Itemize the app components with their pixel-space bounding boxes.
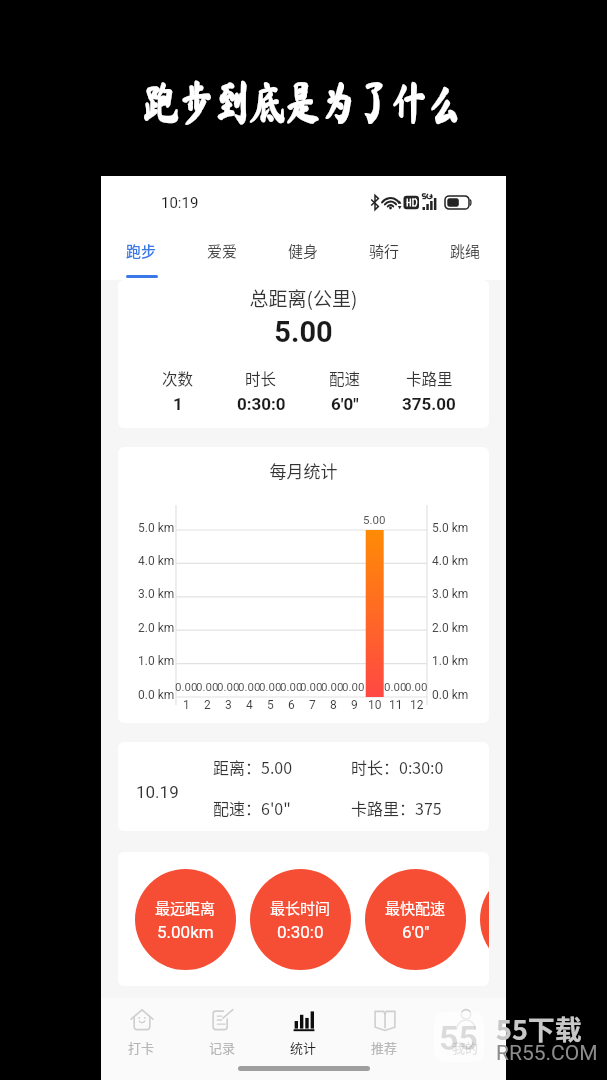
staticText: 健身 (288, 240, 319, 262)
staticText: 统计 (290, 1038, 317, 1057)
staticText: RR55.COM (496, 1041, 598, 1066)
staticText: 1 (173, 394, 183, 414)
staticText: 打卡 (128, 1038, 155, 1057)
staticText: 我的 (452, 1038, 479, 1057)
staticText: 10:19 (161, 194, 199, 212)
staticText: 0.00 (259, 680, 282, 693)
staticText: 距离：5.00 (213, 755, 351, 778)
staticText: 2 (204, 698, 211, 712)
staticText: 0.00 (384, 680, 407, 693)
staticText: 5.0 km (138, 521, 175, 535)
staticText: 跑步到底是为了什么 (143, 80, 461, 126)
staticText: 1 (183, 698, 190, 712)
staticText: 4.0 km (432, 554, 469, 568)
staticText: 0.00 (175, 680, 198, 693)
staticText: 0.00 (217, 680, 240, 693)
staticText: 每月统计 (118, 458, 489, 483)
staticText: 55下载 (496, 1009, 582, 1048)
staticText: 最快配速 (385, 897, 446, 919)
button[interactable]: 爱爱 (182, 224, 263, 280)
staticText: 最长时间 (270, 897, 331, 919)
button[interactable]: 推荐 (344, 998, 425, 1060)
staticText: 次数 (162, 367, 194, 389)
staticText: 6 (288, 698, 295, 712)
button[interactable]: 跳绳 (425, 224, 506, 280)
staticText: 爱爱 (207, 240, 238, 262)
staticText: 0.00 (321, 680, 344, 693)
staticText: 4 (246, 698, 253, 712)
staticText: 2.0 km (432, 621, 469, 635)
staticText: 3.0 km (432, 587, 469, 601)
button[interactable]: 骑行 (344, 224, 425, 280)
button[interactable]: 统计 (263, 998, 344, 1060)
staticText: 配速 (329, 367, 361, 389)
staticText: 0.00 (342, 680, 365, 693)
button[interactable]: 记录 (182, 998, 263, 1060)
staticText: 1.0 km (432, 654, 469, 668)
button[interactable]: 跑步 (101, 224, 182, 280)
staticText: 时长 (245, 367, 277, 389)
staticText: 3.0 km (138, 587, 175, 601)
staticText: 跑步 (126, 240, 157, 262)
staticText: 4.0 km (138, 554, 175, 568)
staticText: 10.19 (136, 782, 179, 802)
button[interactable]: 最长时间 (250, 869, 351, 970)
staticText: 5.00km (157, 922, 214, 942)
button[interactable]: 打卡 (101, 998, 182, 1060)
staticText: 375.00 (402, 394, 456, 414)
staticText: 9 (351, 698, 358, 712)
staticText: 55 (439, 1018, 479, 1058)
staticText: 时长：0:30:0 (351, 755, 489, 778)
staticText: 2.0 km (138, 621, 175, 635)
staticText: 0.00 (405, 680, 428, 693)
staticText: 0:30:0 (237, 394, 286, 414)
staticText: 6'0" (402, 922, 430, 942)
staticText: 推荐 (371, 1038, 398, 1057)
staticText: 12 (410, 698, 424, 712)
staticText: 0.0 km (432, 688, 469, 702)
staticText: 10 (368, 698, 382, 712)
staticText: 最远距离 (155, 897, 216, 919)
staticText: 记录 (209, 1038, 236, 1057)
staticText: 卡路里：375 (351, 796, 489, 819)
staticText: 卡路里 (406, 367, 453, 389)
button[interactable]: 最快配速 (365, 869, 466, 970)
staticText: 5.00 (118, 315, 489, 349)
staticText: 0.00 (196, 680, 219, 693)
staticText: 11 (389, 698, 403, 712)
button[interactable]: 健身 (263, 224, 344, 280)
staticText: 0.00 (300, 680, 323, 693)
staticText: 0.00 (238, 680, 261, 693)
staticText: 6'0" (331, 394, 359, 414)
staticText: 1.0 km (138, 654, 175, 668)
staticText: 7 (309, 698, 316, 712)
staticText: 配速：6'0" (213, 796, 351, 819)
staticText: 骑行 (369, 240, 400, 262)
staticText: 0:30:0 (277, 922, 324, 942)
button[interactable]: 最多卡路里 (480, 869, 489, 970)
button[interactable]: 最远距离 (135, 869, 236, 970)
staticText: 5.0 km (432, 521, 469, 535)
staticText: 跳绳 (450, 240, 481, 262)
staticText: 0.0 km (138, 688, 175, 702)
staticText: 5.00 (363, 513, 386, 526)
staticText: 5 (267, 698, 274, 712)
staticText: 3 (225, 698, 232, 712)
staticText: 总距离(公里) (118, 284, 489, 312)
staticText: 0.00 (280, 680, 303, 693)
button[interactable]: 我的 (425, 998, 506, 1060)
staticText: 8 (330, 698, 337, 712)
